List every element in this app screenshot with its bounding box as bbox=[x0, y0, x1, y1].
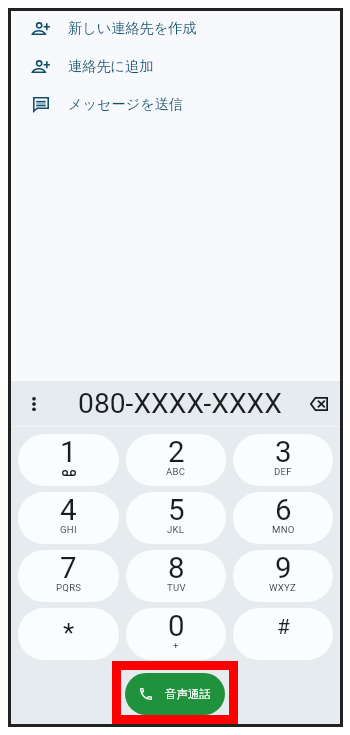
staticText: JKL bbox=[167, 524, 185, 535]
staticText: DEF bbox=[274, 466, 292, 477]
button[interactable]: 音声通話 bbox=[125, 673, 225, 715]
button[interactable]: * bbox=[18, 608, 119, 660]
button[interactable]: 1 bbox=[18, 434, 119, 486]
staticText: 9 bbox=[275, 551, 292, 586]
staticText: メッセージを送信 bbox=[68, 95, 184, 113]
button[interactable]: メッセージを送信 bbox=[11, 85, 340, 123]
staticText: 1 bbox=[60, 435, 77, 470]
staticText: 3 bbox=[275, 435, 292, 470]
staticText: 4 bbox=[60, 493, 77, 528]
button[interactable]: 0 bbox=[126, 608, 226, 660]
button[interactable]: Backspace bbox=[303, 388, 335, 420]
staticText: 6 bbox=[275, 493, 292, 528]
staticText: 音声通話 bbox=[165, 687, 211, 701]
staticText: PQRS bbox=[56, 582, 82, 593]
staticText: 7 bbox=[60, 551, 77, 586]
staticText: GHI bbox=[60, 524, 77, 535]
button[interactable]: 9 bbox=[233, 550, 333, 602]
staticText: 5 bbox=[168, 493, 185, 528]
button[interactable]: 新しい連絡先を作成 bbox=[11, 9, 340, 47]
staticText: * bbox=[63, 618, 75, 648]
button[interactable]: 4 bbox=[18, 492, 119, 544]
button[interactable]: 2 bbox=[126, 434, 226, 486]
button[interactable]: 6 bbox=[233, 492, 333, 544]
button[interactable]: 7 bbox=[18, 550, 119, 602]
staticText: ABC bbox=[166, 466, 186, 477]
staticText: MNO bbox=[272, 524, 295, 535]
staticText: 新しい連絡先を作成 bbox=[68, 19, 197, 37]
button[interactable]: # bbox=[233, 608, 333, 660]
button[interactable]: 8 bbox=[126, 550, 226, 602]
staticText: 2 bbox=[168, 435, 185, 470]
staticText: + bbox=[173, 640, 179, 651]
staticText: # bbox=[277, 615, 290, 640]
staticText: 0 bbox=[168, 609, 185, 644]
staticText: 連絡先に追加 bbox=[68, 57, 154, 75]
button[interactable]: More options bbox=[18, 388, 50, 420]
staticText: 080-XXXX-XXXX bbox=[78, 387, 282, 420]
button[interactable]: 連絡先に追加 bbox=[11, 47, 340, 85]
button[interactable]: 5 bbox=[126, 492, 226, 544]
button[interactable]: 3 bbox=[233, 434, 333, 486]
staticText: TUV bbox=[167, 582, 186, 593]
staticText: WXYZ bbox=[269, 582, 297, 593]
staticText: 8 bbox=[168, 551, 185, 586]
